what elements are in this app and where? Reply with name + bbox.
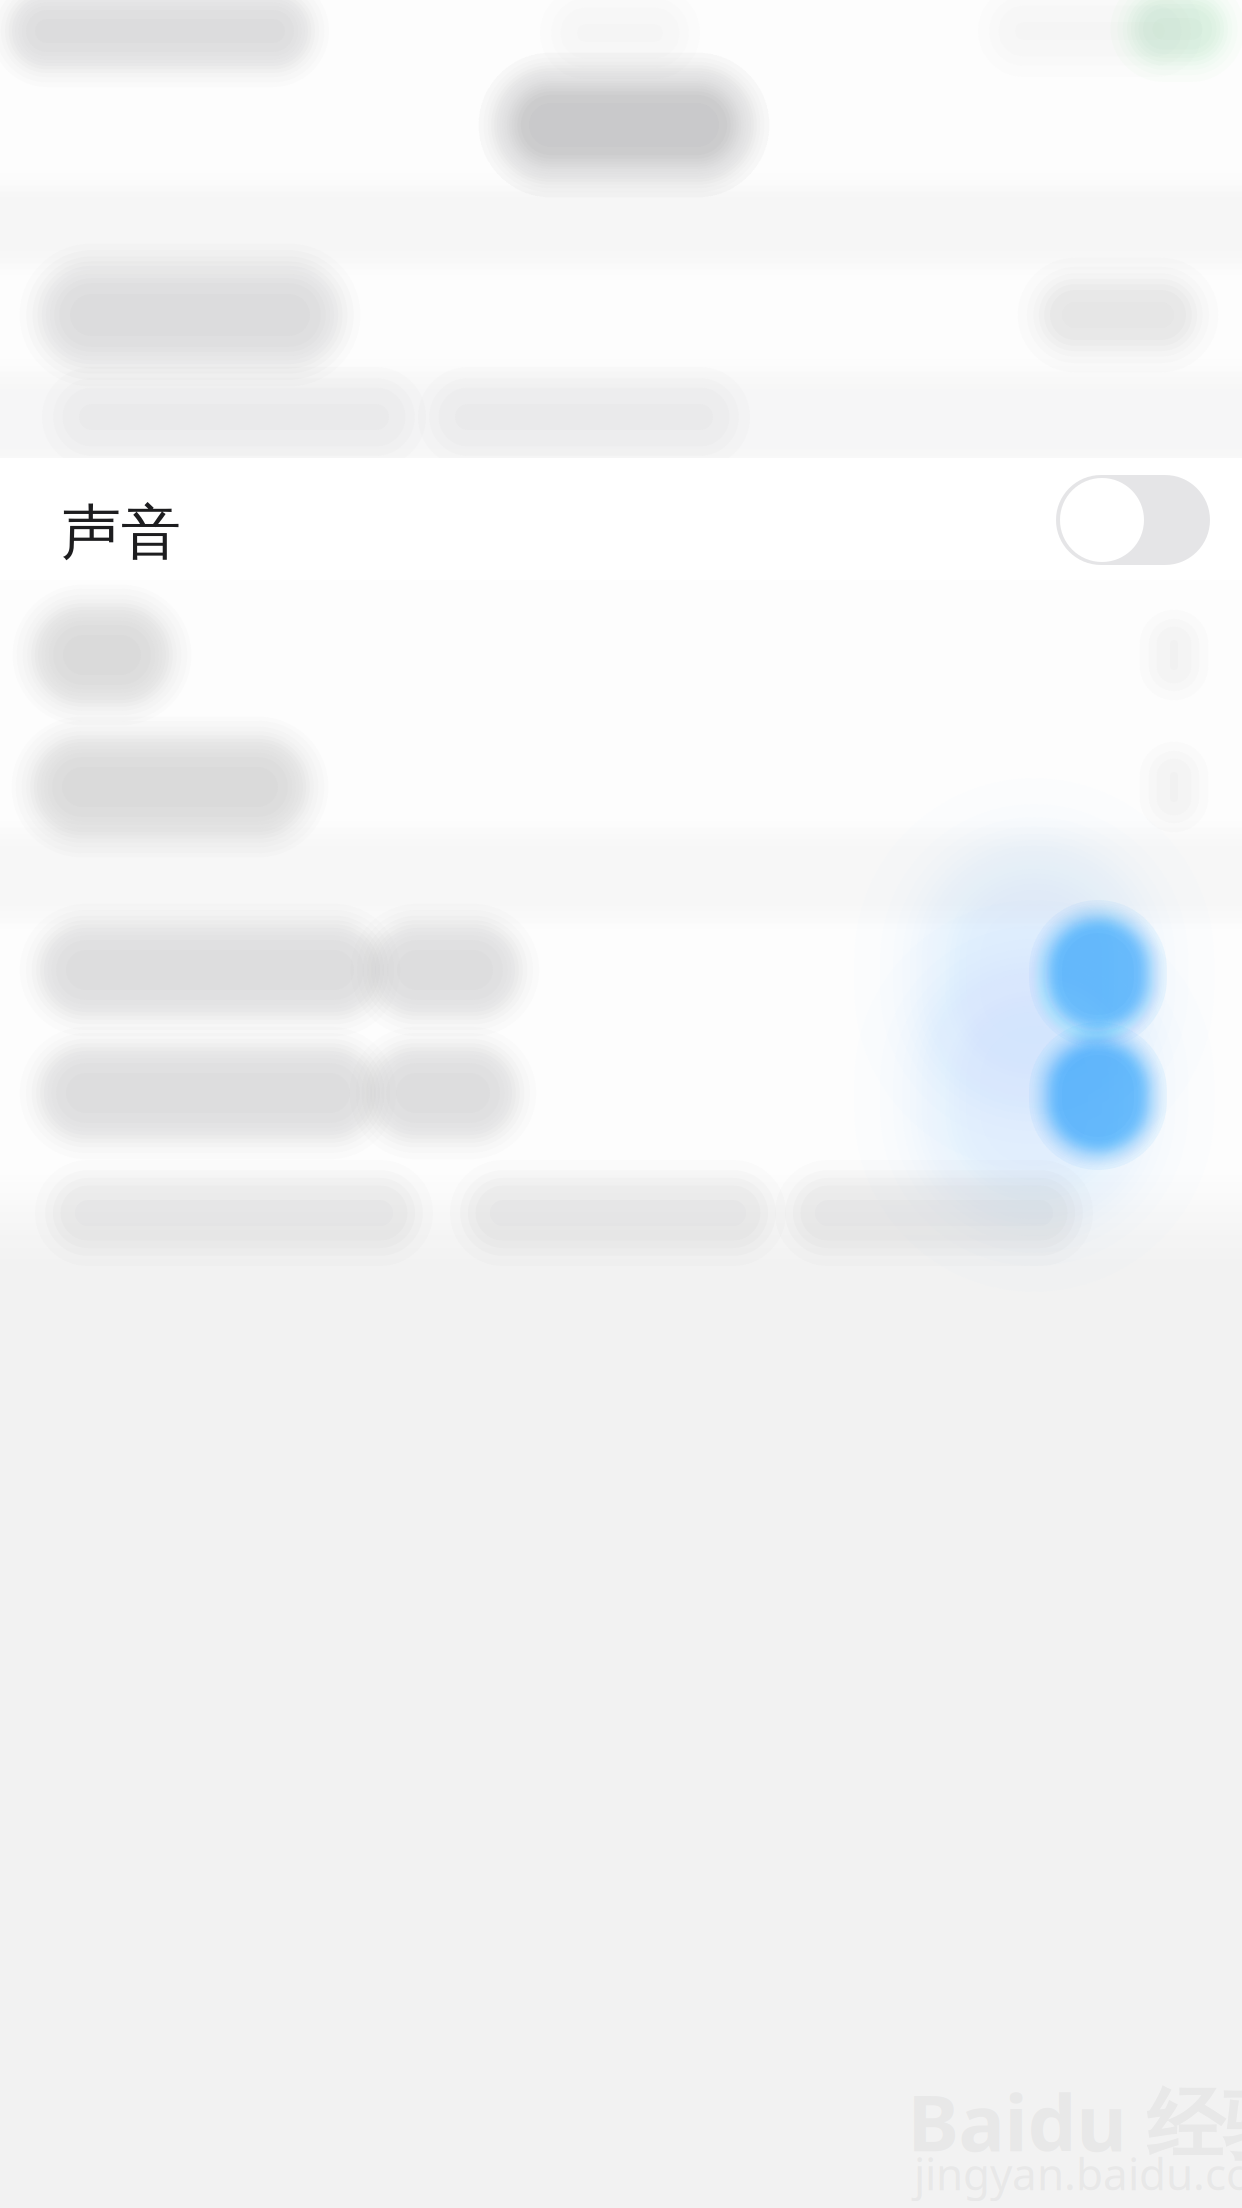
staticText: 声音 bbox=[61, 496, 181, 570]
button[interactable]: 声音 bbox=[0, 458, 1242, 580]
staticText: Baidu 经验 bbox=[907, 2070, 1242, 2173]
staticText: jingyan.baidu.com bbox=[914, 2144, 1242, 2202]
